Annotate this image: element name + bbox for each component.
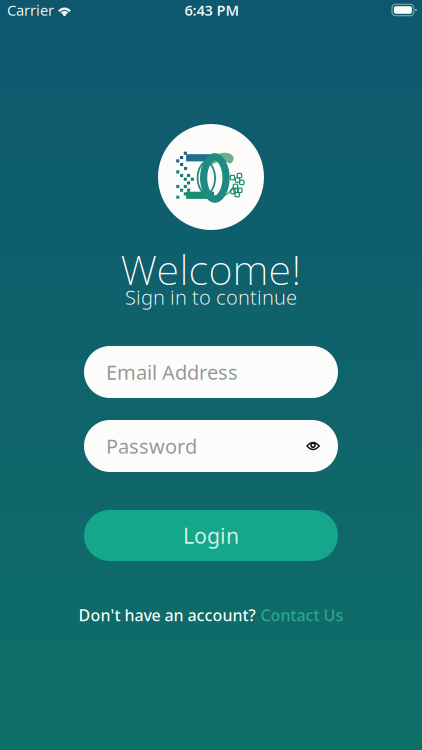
staticText: Sign in to continue — [125, 284, 297, 310]
button[interactable]: Email Address — [84, 346, 338, 398]
staticText: Email Address — [106, 359, 238, 385]
button[interactable]: Login — [84, 510, 338, 561]
staticText: Carrier — [7, 0, 54, 20]
button[interactable]: Password — [84, 420, 338, 472]
button[interactable]: Contact Us — [260, 608, 343, 622]
staticText: Contact Us — [260, 604, 343, 626]
staticText: 6:43 PM — [184, 0, 239, 20]
staticText: Don't have an account? — [78, 604, 255, 626]
staticText: Login — [183, 521, 239, 550]
staticText: Welcome! — [120, 242, 301, 296]
staticText: Password — [106, 433, 197, 459]
